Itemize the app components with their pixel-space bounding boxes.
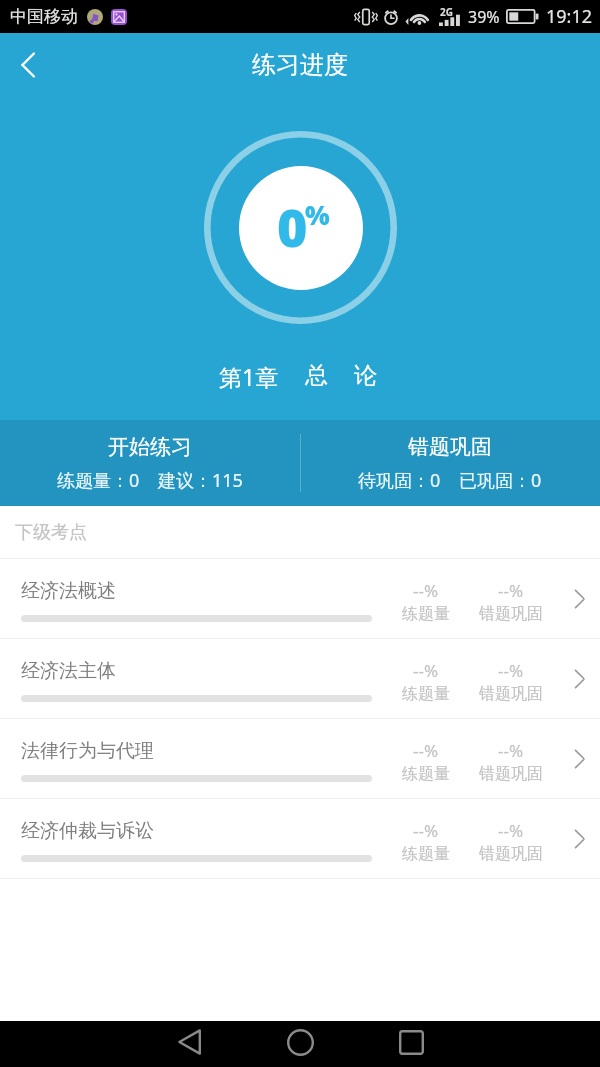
staticText: 第1章: [219, 361, 279, 392]
staticText: 经济法主体: [21, 659, 116, 683]
staticText: 错题巩固: [479, 844, 543, 864]
staticText: 错题巩固: [479, 764, 543, 784]
staticText: 论: [354, 361, 377, 390]
staticText: 0: [277, 191, 308, 262]
button[interactable]: 经济法主体: [0, 639, 600, 719]
staticText: --%: [413, 659, 439, 682]
staticText: 下级考点: [15, 521, 87, 544]
staticText: 待巩固：0 已巩固：0: [358, 468, 542, 493]
staticText: 法律行为与代理: [21, 739, 154, 763]
staticText: 练题量: [402, 844, 450, 864]
staticText: 错题巩固: [479, 604, 543, 624]
staticText: 2G: [440, 5, 453, 19]
staticText: --%: [498, 739, 524, 762]
staticText: 经济仲裁与诉讼: [21, 819, 154, 843]
other: Open: [566, 746, 592, 772]
button[interactable]: Home: [245, 1021, 356, 1063]
staticText: 练题量: [402, 764, 450, 784]
staticText: 错题巩固: [408, 434, 492, 460]
staticText: 19:12: [546, 4, 593, 29]
staticText: 练习进度: [252, 50, 348, 80]
staticText: --%: [498, 579, 524, 602]
button[interactable]: Back: [134, 1021, 245, 1063]
staticText: %: [305, 197, 330, 232]
button[interactable]: Recents: [356, 1021, 467, 1063]
button[interactable]: Back: [0, 35, 56, 91]
button[interactable]: 开始练习: [0, 424, 300, 503]
staticText: --%: [413, 819, 439, 842]
staticText: 练题量：0 建议：115: [57, 468, 243, 493]
staticText: --%: [498, 819, 524, 842]
other: Open: [566, 666, 592, 692]
button[interactable]: 经济仲裁与诉讼: [0, 799, 600, 879]
staticText: 错题巩固: [479, 684, 543, 704]
staticText: 中国移动: [10, 6, 78, 27]
staticText: --%: [498, 659, 524, 682]
other: Open: [566, 826, 592, 852]
staticText: 经济法概述: [21, 579, 116, 603]
other: Open: [566, 586, 592, 612]
button[interactable]: 法律行为与代理: [0, 719, 600, 799]
staticText: --%: [413, 579, 439, 602]
staticText: --%: [413, 739, 439, 762]
button[interactable]: 错题巩固: [300, 424, 600, 503]
staticText: 练题量: [402, 604, 450, 624]
staticText: 练题量: [402, 684, 450, 704]
staticText: 开始练习: [108, 434, 192, 460]
staticText: 总: [305, 361, 328, 390]
staticText: 39%: [468, 6, 500, 28]
button[interactable]: 经济法概述: [0, 559, 600, 639]
